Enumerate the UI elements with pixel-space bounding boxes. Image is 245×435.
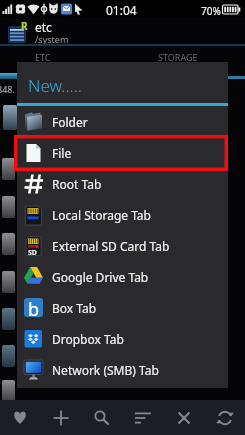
staticText: 848. <box>0 83 15 95</box>
staticText: SD <box>28 248 37 258</box>
staticText: etc <box>35 19 52 35</box>
button[interactable] <box>122 400 163 435</box>
staticText: /system <box>35 33 69 45</box>
button[interactable] <box>81 400 122 435</box>
staticText: 01:04 <box>106 2 137 18</box>
button[interactable] <box>40 400 81 435</box>
staticText: New..... <box>28 74 82 97</box>
staticText: Network (SMB) Tab <box>52 362 159 378</box>
button[interactable]: Root Tab <box>17 168 228 199</box>
staticText: Dropbox Tab <box>52 331 124 347</box>
button[interactable] <box>0 400 40 435</box>
button[interactable]: Dropbox Tab <box>17 323 228 354</box>
staticText: External SD Card Tab <box>52 238 170 254</box>
button[interactable]: Local Storage Tab <box>17 199 228 230</box>
staticText: Box Tab <box>52 300 97 316</box>
staticText: ETC <box>35 51 51 63</box>
button[interactable]: b <box>17 292 228 323</box>
staticText: b <box>28 298 40 316</box>
button[interactable]: R <box>0 18 245 44</box>
button[interactable] <box>163 400 204 435</box>
staticText: Root Tab <box>52 176 102 192</box>
staticText: Google Drive Tab <box>52 269 149 285</box>
staticText: File <box>52 145 72 161</box>
staticText: R <box>21 19 28 33</box>
button[interactable]: Network (SMB) Tab <box>17 354 228 385</box>
button[interactable]: Google Drive Tab <box>17 261 228 292</box>
staticText: STORAGE <box>158 51 198 63</box>
button[interactable]: Folder <box>17 106 228 137</box>
staticText: Local Storage Tab <box>52 207 151 223</box>
button[interactable] <box>204 400 245 435</box>
button[interactable]: SD <box>17 230 228 261</box>
staticText: Folder <box>52 114 88 130</box>
staticText: 70% <box>201 4 221 18</box>
button[interactable]: File <box>17 137 228 168</box>
